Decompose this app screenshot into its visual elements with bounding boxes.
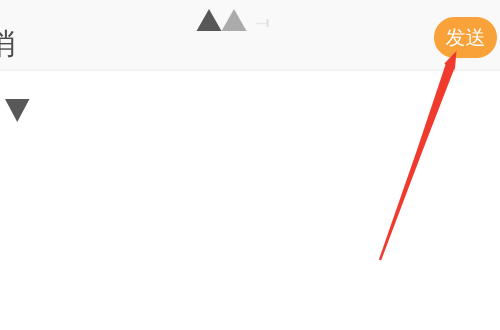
staticText: 消 — [0, 26, 15, 62]
button[interactable]: Expand — [0, 92, 36, 128]
button[interactable]: Cancel — [0, 24, 15, 64]
button[interactable]: 发送 — [434, 17, 497, 58]
button[interactable]: Page indicator — [0, 0, 56, 34]
staticText: 发送 — [445, 25, 485, 50]
